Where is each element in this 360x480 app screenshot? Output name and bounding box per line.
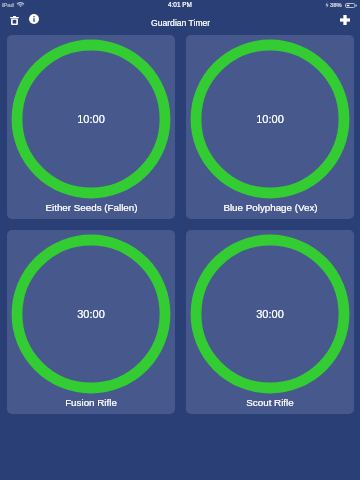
staticText: Either Seeds (Fallen)	[45, 202, 138, 213]
staticText: Guardian Timer	[151, 18, 211, 28]
staticText: iPad	[2, 2, 14, 8]
staticText: 10:00	[77, 113, 105, 125]
button[interactable]: Info	[23, 8, 45, 30]
button[interactable]: 10:00	[7, 35, 175, 219]
staticText: Fusion Rifle	[65, 397, 117, 408]
staticText: 30:00	[256, 308, 284, 320]
staticText: Blue Polyphage (Vex)	[223, 202, 318, 213]
button[interactable]: Delete all timers	[3, 9, 25, 31]
staticText: 38%	[330, 2, 342, 8]
staticText: 4:01 PM	[168, 1, 192, 8]
staticText: Scout Rifle	[246, 397, 294, 408]
staticText: 30:00	[77, 308, 105, 320]
button[interactable]: 30:00	[186, 230, 354, 414]
button[interactable]: 30:00	[7, 230, 175, 414]
button[interactable]: 10:00	[186, 35, 354, 219]
button[interactable]: Add timer	[334, 9, 356, 31]
staticText: 10:00	[256, 113, 284, 125]
